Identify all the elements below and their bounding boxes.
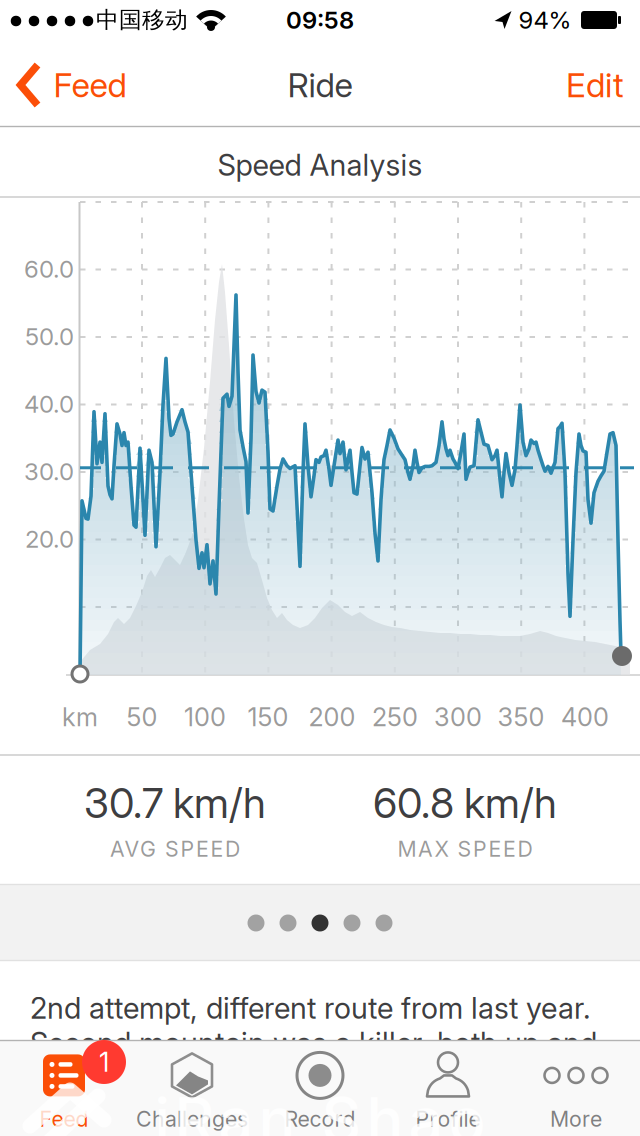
staticText: 20.0 [25,525,74,553]
staticText: Feed [53,65,126,105]
staticText: 60.0 [24,255,74,283]
staticText: 30.7 km/h [84,779,266,827]
staticText: 100 [184,702,226,732]
staticText: Ride [287,65,352,105]
staticText: 300 [434,702,482,732]
staticText: 09:58 [286,6,354,34]
staticText: 50 [126,702,157,732]
staticText: iRan Shao [154,1084,485,1136]
staticText: Challenges [136,1106,248,1132]
button[interactable]: Edit [566,65,624,105]
staticText: 40.0 [24,390,74,418]
button[interactable]: Profile [384,1040,512,1136]
staticText: 中国移动 [96,6,188,34]
staticText: Speed Analysis [217,148,422,182]
staticText: MAX SPEED [397,836,532,862]
staticText: Record [284,1106,355,1132]
staticText: 50.0 [25,322,74,351]
staticText: 2nd attempt, different route from last y… [30,991,591,1025]
staticText: Feed [39,1106,88,1132]
staticText: Second mountain was a killer, both up an… [30,1026,597,1060]
staticText: km [62,702,98,732]
button[interactable]: Challenges [128,1040,256,1136]
staticText: 350 [497,702,544,732]
staticText: 400 [561,702,609,732]
staticText: More [550,1106,602,1132]
button[interactable]: Back to Feed [17,62,126,108]
staticText: 150 [247,702,288,732]
staticText: 1 [99,1046,109,1078]
staticText: Edit [566,65,624,105]
staticText: AVG SPEED [110,836,240,862]
staticText: 60.8 km/h [373,779,557,827]
button[interactable]: Record [256,1040,384,1136]
staticText: 250 [372,702,418,732]
button[interactable]: More [512,1040,640,1136]
staticText: 94% [518,6,571,34]
staticText: 30.0 [24,457,74,486]
staticText: Profile [415,1106,480,1132]
button[interactable]: Feed [0,1040,128,1136]
staticText: 200 [308,702,355,732]
